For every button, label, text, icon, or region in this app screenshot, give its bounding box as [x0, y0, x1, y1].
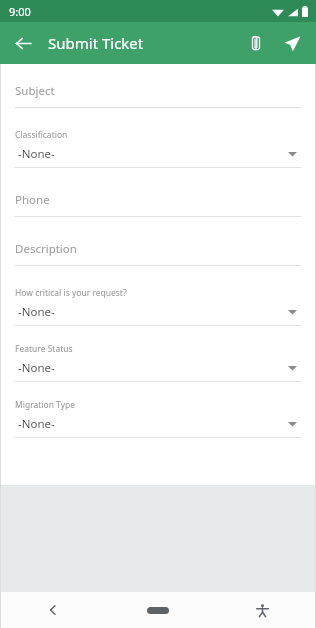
button[interactable]: Back: [1, 592, 105, 628]
staticText: Migration Type: [15, 399, 76, 411]
staticText: Feature Status: [15, 343, 73, 355]
staticText: -None-: [18, 360, 55, 376]
staticText: 9:00: [9, 4, 31, 19]
button[interactable]: How critical is your request?: [15, 287, 301, 326]
button[interactable]: Home: [105, 592, 210, 628]
button[interactable]: Send: [274, 25, 310, 61]
button[interactable]: Back: [6, 26, 40, 60]
staticText: -None-: [18, 146, 55, 162]
button[interactable]: Classification: [15, 129, 301, 168]
staticText: How critical is your request?: [15, 287, 127, 299]
button[interactable]: Subject: [15, 80, 301, 108]
staticText: Subject: [15, 83, 55, 99]
button[interactable]: Accessibility: [210, 592, 315, 628]
staticText: Submit Ticket: [48, 33, 144, 53]
staticText: -None-: [18, 304, 55, 320]
staticText: Classification: [15, 129, 68, 141]
staticText: -None-: [18, 416, 55, 432]
staticText: Description: [15, 241, 77, 257]
button[interactable]: Phone: [15, 189, 301, 217]
button[interactable]: Description: [15, 238, 301, 266]
button[interactable]: Migration Type: [15, 399, 301, 438]
button[interactable]: Attach file: [238, 25, 274, 61]
staticText: Phone: [15, 192, 50, 208]
button[interactable]: Feature Status: [15, 343, 301, 382]
